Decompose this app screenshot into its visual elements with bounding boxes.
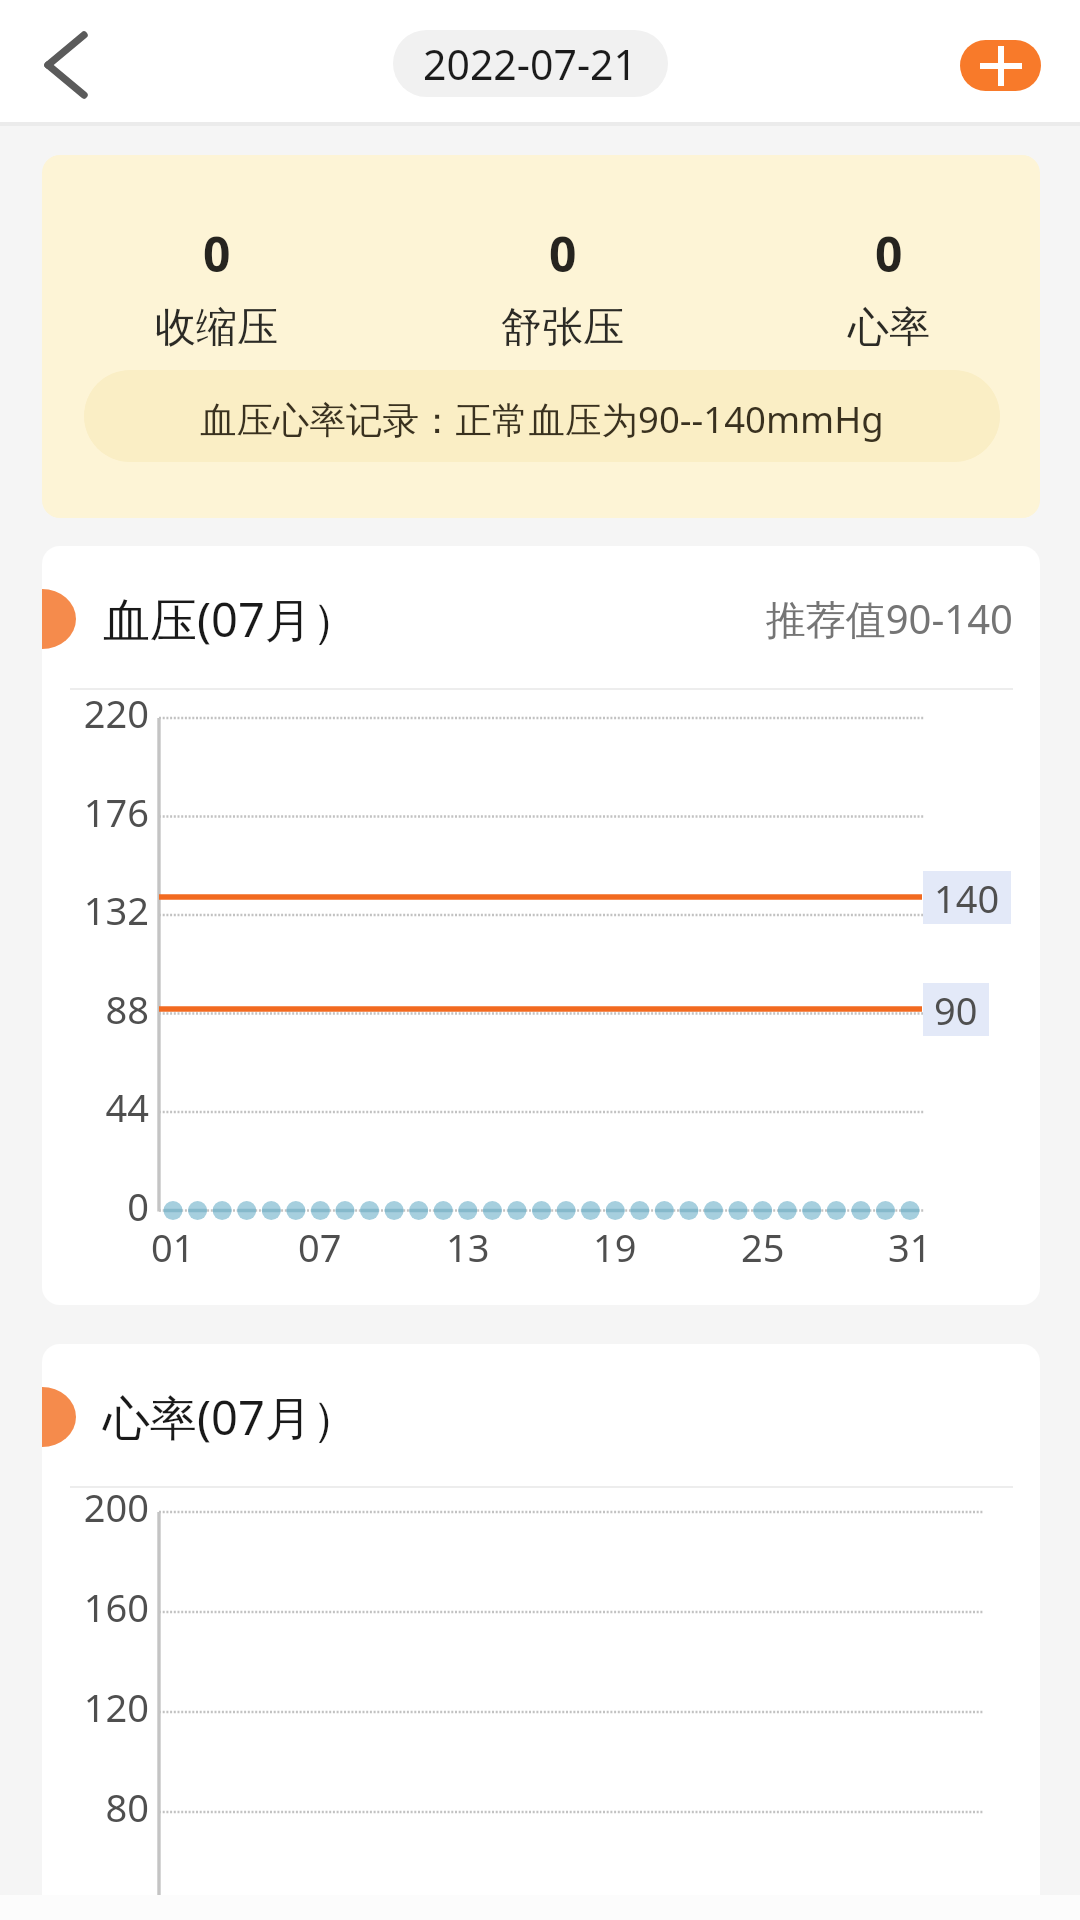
button[interactable]: 0 (76, 221, 356, 381)
staticText: 31 (888, 1221, 932, 1273)
staticText: 90 (934, 984, 978, 1036)
staticText: 01 (151, 1221, 195, 1273)
staticText: 88 (105, 983, 149, 1035)
button[interactable]: 0 (422, 221, 702, 381)
staticText: 120 (83, 1681, 149, 1733)
staticText: 80 (105, 1781, 149, 1833)
button[interactable]: 2022-07-21 (393, 30, 668, 97)
staticText: 13 (446, 1221, 490, 1273)
staticText: 血压心率记录：正常血压为90--140mmHg (200, 394, 884, 444)
staticText: 收缩压 (155, 302, 278, 354)
staticText: 0 (549, 221, 577, 286)
staticText: 0 (875, 221, 903, 286)
staticText: 舒张压 (501, 302, 624, 354)
staticText: 220 (83, 687, 149, 739)
staticText: 44 (105, 1081, 149, 1133)
staticText: 0 (203, 221, 231, 286)
button[interactable]: 心率(07月） (42, 1344, 1040, 1920)
staticText: 血压(07月） (103, 587, 359, 651)
staticText: 140 (934, 872, 1000, 924)
staticText: 25 (741, 1221, 785, 1273)
staticText: 心率 (848, 302, 930, 354)
staticText: 176 (83, 786, 149, 838)
staticText: 160 (83, 1581, 149, 1633)
button[interactable]: 0 (42, 155, 1040, 518)
button[interactable]: Back (14, 17, 118, 113)
staticText: 200 (83, 1481, 149, 1533)
staticText: 19 (593, 1221, 637, 1273)
button[interactable]: 0 (749, 221, 1029, 381)
button[interactable]: Add record (960, 40, 1041, 91)
staticText: 推荐值90-140 (765, 591, 1013, 646)
staticText: 132 (83, 884, 149, 936)
staticText: 心率(07月） (103, 1385, 359, 1449)
button[interactable]: 血压(07月） (42, 546, 1040, 1305)
staticText: 2022-07-21 (423, 36, 638, 92)
staticText: 0 (127, 1180, 149, 1232)
staticText: 07 (298, 1221, 342, 1273)
